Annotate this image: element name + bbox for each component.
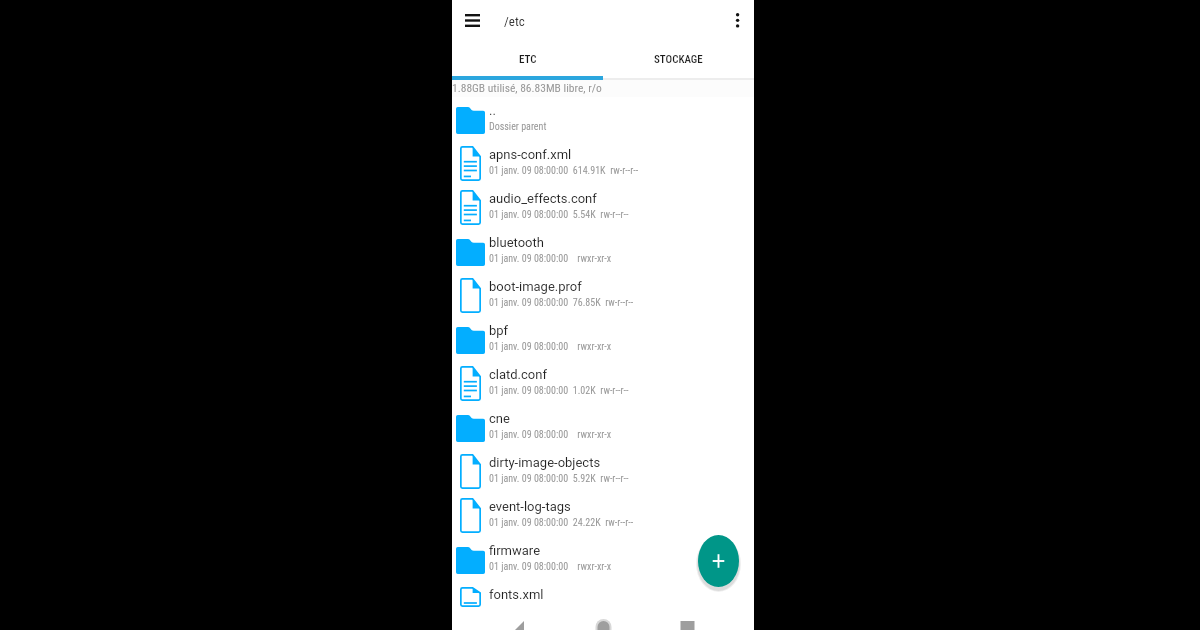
staticText: firmware	[489, 543, 541, 558]
staticText: 01 janv. 09 08:00:00 rwxr-xr-x	[489, 341, 612, 353]
button[interactable]: apns-conf.xml	[452, 141, 754, 185]
button[interactable]: Back	[502, 612, 533, 630]
staticText: event-log-tags	[489, 499, 571, 514]
button[interactable]: boot-image.prof	[452, 273, 754, 317]
staticText: cne	[489, 411, 510, 426]
staticText: 01 janv. 09 08:00:00 5.54K rw-r--r--	[489, 209, 629, 221]
staticText: ..	[489, 103, 496, 118]
staticText: 01 janv. 09 08:00:00 rwxr-xr-x	[489, 253, 612, 265]
staticText: apns-conf.xml	[489, 147, 572, 162]
staticText: ETC	[519, 53, 537, 66]
staticText: 01 janv. 09 08:00:00 rwxr-xr-x	[489, 429, 612, 441]
button[interactable]: dirty-image-objects	[452, 449, 754, 493]
button[interactable]: bluetooth	[452, 229, 754, 273]
staticText: 01 janv. 09 08:00:00 rwxr-xr-x	[489, 561, 612, 573]
button[interactable]: event-log-tags	[452, 493, 754, 537]
staticText: Dossier parent	[489, 121, 547, 133]
button[interactable]: clatd.conf	[452, 361, 754, 405]
staticText: dirty-image-objects	[489, 455, 601, 470]
staticText: boot-image.prof	[489, 279, 582, 294]
staticText: bpf	[489, 323, 509, 338]
button[interactable]: fonts.xml	[452, 581, 754, 625]
button[interactable]: firmware	[452, 537, 754, 581]
button[interactable]: STOCKAGE	[603, 42, 754, 76]
button[interactable]: Recents	[672, 612, 703, 630]
staticText: 1.88GB utilisé, 86.83MB libre, r/o	[452, 81, 602, 94]
button[interactable]: Menu	[455, 0, 490, 40]
button[interactable]: ..	[452, 97, 754, 141]
button[interactable]: More options	[720, 0, 755, 40]
staticText: fonts.xml	[489, 587, 544, 602]
staticText: 01 janv. 09 08:00:00 76.85K rw-r--r--	[489, 297, 634, 309]
staticText: 01 janv. 09 08:00:00 614.91K rw-r--r--	[489, 165, 639, 177]
staticText: 01 janv. 09 08:00:00 24.22K rw-r--r--	[489, 517, 634, 529]
staticText: bluetooth	[489, 235, 544, 250]
staticText: 01 janv. 09 08:00:00 1.02K rw-r--r--	[489, 385, 629, 397]
staticText: 01 janv. 09 08:00:00 5.92K rw-r--r--	[489, 473, 629, 485]
button[interactable]: Home	[588, 612, 619, 630]
staticText: audio_effects.conf	[489, 191, 597, 206]
staticText: STOCKAGE	[654, 53, 703, 66]
button[interactable]: bpf	[452, 317, 754, 361]
staticText: clatd.conf	[489, 367, 547, 382]
button[interactable]: ETC	[452, 42, 603, 76]
button[interactable]: cne	[452, 405, 754, 449]
staticText: /etc	[504, 14, 525, 29]
button[interactable]: Add	[693, 530, 744, 592]
button[interactable]: audio_effects.conf	[452, 185, 754, 229]
